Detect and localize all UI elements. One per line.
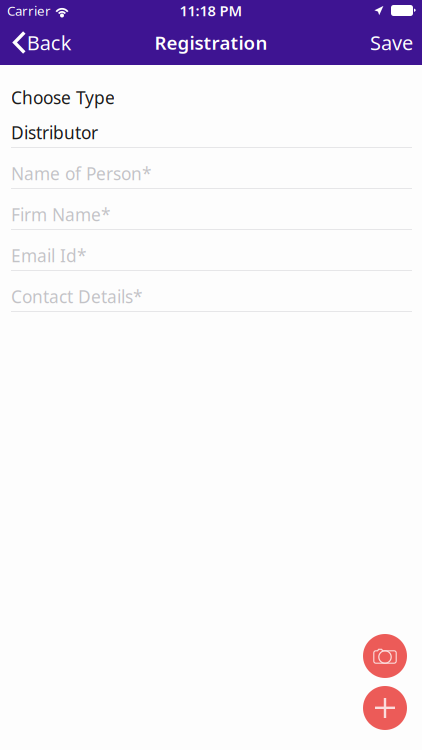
staticText: Contact Details* (11, 285, 143, 308)
staticText: 11:18 PM (179, 1, 242, 20)
staticText: Carrier (7, 2, 51, 19)
button[interactable]: Back (0, 22, 82, 62)
staticText: Name of Person* (11, 162, 152, 185)
staticText: Choose Type (11, 86, 115, 109)
button[interactable]: Save (359, 22, 422, 62)
staticText: Firm Name* (11, 203, 111, 226)
button[interactable]: Email Id* (0, 230, 422, 271)
button[interactable]: Distributor (0, 107, 422, 148)
button[interactable]: Take photo (363, 634, 407, 678)
staticText: Registration (154, 30, 267, 55)
staticText: Back (27, 29, 72, 56)
staticText: Email Id* (11, 244, 87, 267)
button[interactable]: Name of Person* (0, 148, 422, 189)
button[interactable]: Contact Details* (0, 271, 422, 312)
staticText: Save (370, 29, 413, 56)
button[interactable]: Firm Name* (0, 189, 422, 230)
staticText: Distributor (11, 121, 98, 144)
button[interactable]: Add (363, 686, 407, 730)
